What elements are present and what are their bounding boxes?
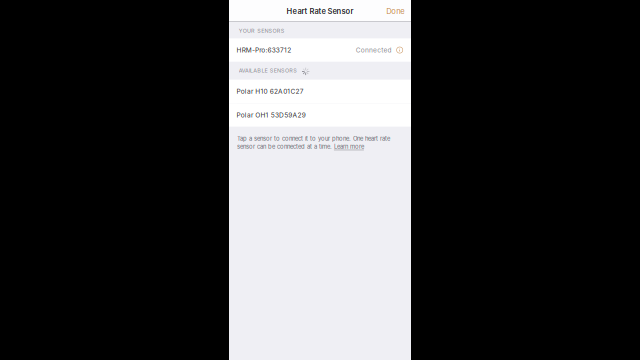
staticText: YOUR SENSORS xyxy=(239,27,285,34)
staticText: Learn more xyxy=(334,143,364,150)
staticText: Done xyxy=(386,7,404,16)
staticText: Connected xyxy=(356,46,392,54)
staticText: Tap a sensor to connect it to your phone… xyxy=(237,135,390,142)
button[interactable]: Polar H10 62A01C27 xyxy=(229,80,411,103)
staticText: HRM-Pro:633712 xyxy=(237,46,291,54)
button[interactable]: HRM-Pro:633712 xyxy=(229,38,411,62)
staticText: AVAILABLE SENSORS xyxy=(239,67,297,74)
button[interactable]: Done xyxy=(377,1,411,21)
button[interactable]: Learn more xyxy=(334,143,364,150)
staticText: sensor can be connected at a time. xyxy=(237,143,334,150)
staticText: Polar OH1 53D59A29 xyxy=(237,111,306,119)
staticText: Heart Rate Sensor xyxy=(286,7,353,16)
button[interactable]: Polar OH1 53D59A29 xyxy=(229,103,411,127)
staticText: Polar H10 62A01C27 xyxy=(237,87,304,95)
